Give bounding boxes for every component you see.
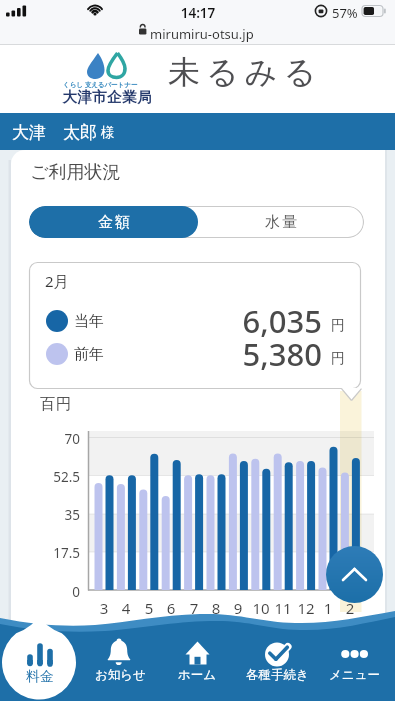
button[interactable] [86,632,152,692]
staticText: 円 [331,317,345,335]
staticText: 3 [92,598,116,618]
staticText: ホーム [178,667,217,683]
staticText: 4 [114,598,138,618]
staticText: 8 [204,598,228,618]
staticText: 金額 [97,213,131,232]
staticText: mirumiru-otsu.jp [150,25,254,43]
staticText: 前年 [74,345,104,364]
button[interactable] [166,632,228,692]
staticText: 14:17 [178,4,218,22]
staticText: 当年 [74,312,104,331]
staticText: メニュー [329,667,380,683]
staticText: 円 [331,350,345,368]
staticText: 7 [182,598,206,618]
staticText: 70 [46,430,80,448]
staticText: くらし 支えるパートナー [63,80,138,89]
staticText: 料金 [26,668,54,686]
button[interactable]: 金額 [29,206,198,238]
staticText: 10 [249,598,273,618]
staticText: お知らせ [95,667,146,683]
staticText: 未るみる [168,52,323,92]
staticText: 57% [332,4,358,22]
staticText: 17.5 [46,544,80,562]
button[interactable] [326,546,383,603]
staticText: 様 [101,124,115,141]
staticText: 5 [137,598,161,618]
staticText: 6 [159,598,183,618]
staticText: 2月 [45,271,69,291]
staticText: 9 [226,598,250,618]
staticText: 0 [46,583,80,601]
staticText: 1 [316,598,340,618]
button[interactable] [240,632,314,692]
staticText: 百円 [40,394,71,414]
staticText: 2 [338,598,362,618]
staticText: 大津市企業局 [62,88,152,106]
staticText: 大津 太郎 [12,120,97,143]
staticText: 各種手続き [246,667,309,683]
staticText: 12 [294,598,318,618]
button[interactable] [322,632,384,692]
button[interactable] [2,620,76,701]
button[interactable]: 水量 [198,206,364,238]
staticText: 6,035 [182,300,322,342]
staticText: 52.5 [46,468,80,486]
staticText: ご利用状況 [30,161,121,184]
staticText: 11 [271,598,295,618]
staticText: 5,380 [182,333,322,375]
staticText: 35 [46,506,80,524]
staticText: 水量 [264,213,298,232]
